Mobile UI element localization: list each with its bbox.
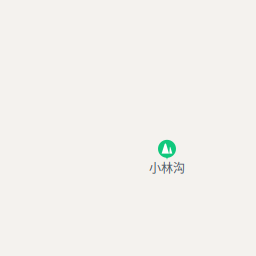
button[interactable]: 小林沟 (149, 140, 185, 177)
staticText: 小林沟 (149, 159, 185, 176)
